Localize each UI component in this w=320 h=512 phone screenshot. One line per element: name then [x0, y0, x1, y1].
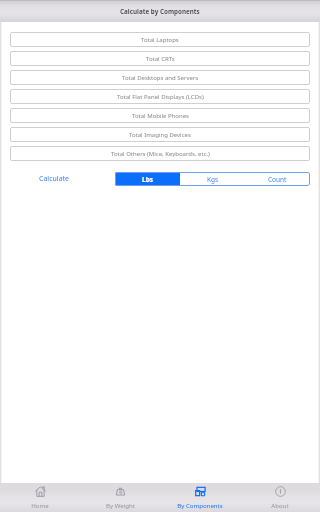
- button[interactable]: Home: [0, 483, 80, 512]
- button[interactable]: About: [240, 483, 320, 512]
- button[interactable]: Calculate: [39, 174, 70, 184]
- button[interactable]: Total Laptops: [10, 32, 310, 47]
- button[interactable]: Count: [245, 172, 310, 186]
- staticText: Count: [268, 175, 287, 184]
- staticText: Total Others (Mice, Keyboards, etc.): [111, 150, 210, 158]
- staticText: By Components: [177, 501, 223, 509]
- staticText: Total Imaging Devices: [129, 131, 191, 139]
- button[interactable]: Total Flat Panel Displays (LCDs): [10, 89, 310, 104]
- button[interactable]: Lbs: [115, 172, 180, 186]
- staticText: Total Desktops and Servers: [122, 74, 199, 82]
- button[interactable]: Total Others (Mice, Keyboards, etc.): [10, 146, 310, 161]
- staticText: Total Laptops: [141, 36, 179, 44]
- staticText: Total Flat Panel Displays (LCDs): [117, 93, 204, 101]
- staticText: Home: [31, 501, 49, 509]
- staticText: By Weight: [106, 501, 135, 509]
- staticText: Kgs: [207, 175, 219, 184]
- button[interactable]: Total Mobile Phones: [10, 108, 310, 123]
- staticText: Total CRTs: [146, 55, 175, 63]
- staticText: About: [271, 501, 289, 509]
- button[interactable]: By Weight: [80, 483, 160, 512]
- button[interactable]: By Components: [160, 483, 240, 512]
- button[interactable]: Total CRTs: [10, 51, 310, 66]
- staticText: Total Mobile Phones: [132, 112, 189, 120]
- button[interactable]: Total Imaging Devices: [10, 127, 310, 142]
- button[interactable]: Total Desktops and Servers: [10, 70, 310, 85]
- button[interactable]: Kgs: [180, 172, 245, 186]
- staticText: Lbs: [142, 175, 154, 184]
- staticText: Calculate by Components: [120, 7, 200, 16]
- staticText: Calculate: [39, 174, 70, 184]
